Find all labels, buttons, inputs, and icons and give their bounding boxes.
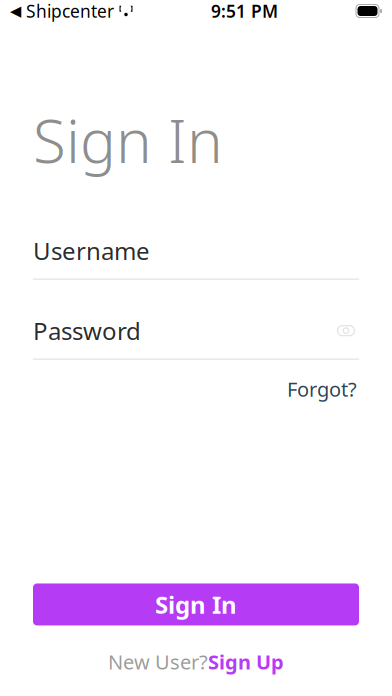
button[interactable]: Show password [333,320,359,342]
staticText: 9:51 PM [211,0,278,22]
staticText: Shipcenter [21,0,119,22]
button[interactable]: New User? [0,642,392,681]
button[interactable]: Sign In [33,583,359,625]
staticText: Password [33,315,141,347]
staticText: New User? [108,648,208,675]
staticText: Forgot? [287,376,357,402]
staticText: Sign In [33,100,223,180]
staticText: Username [33,235,150,267]
button[interactable]: Forgot? [285,372,359,406]
staticText: Sign In [155,588,237,620]
staticText: ◀ [10,3,21,19]
staticText: Sign Up [208,648,284,675]
